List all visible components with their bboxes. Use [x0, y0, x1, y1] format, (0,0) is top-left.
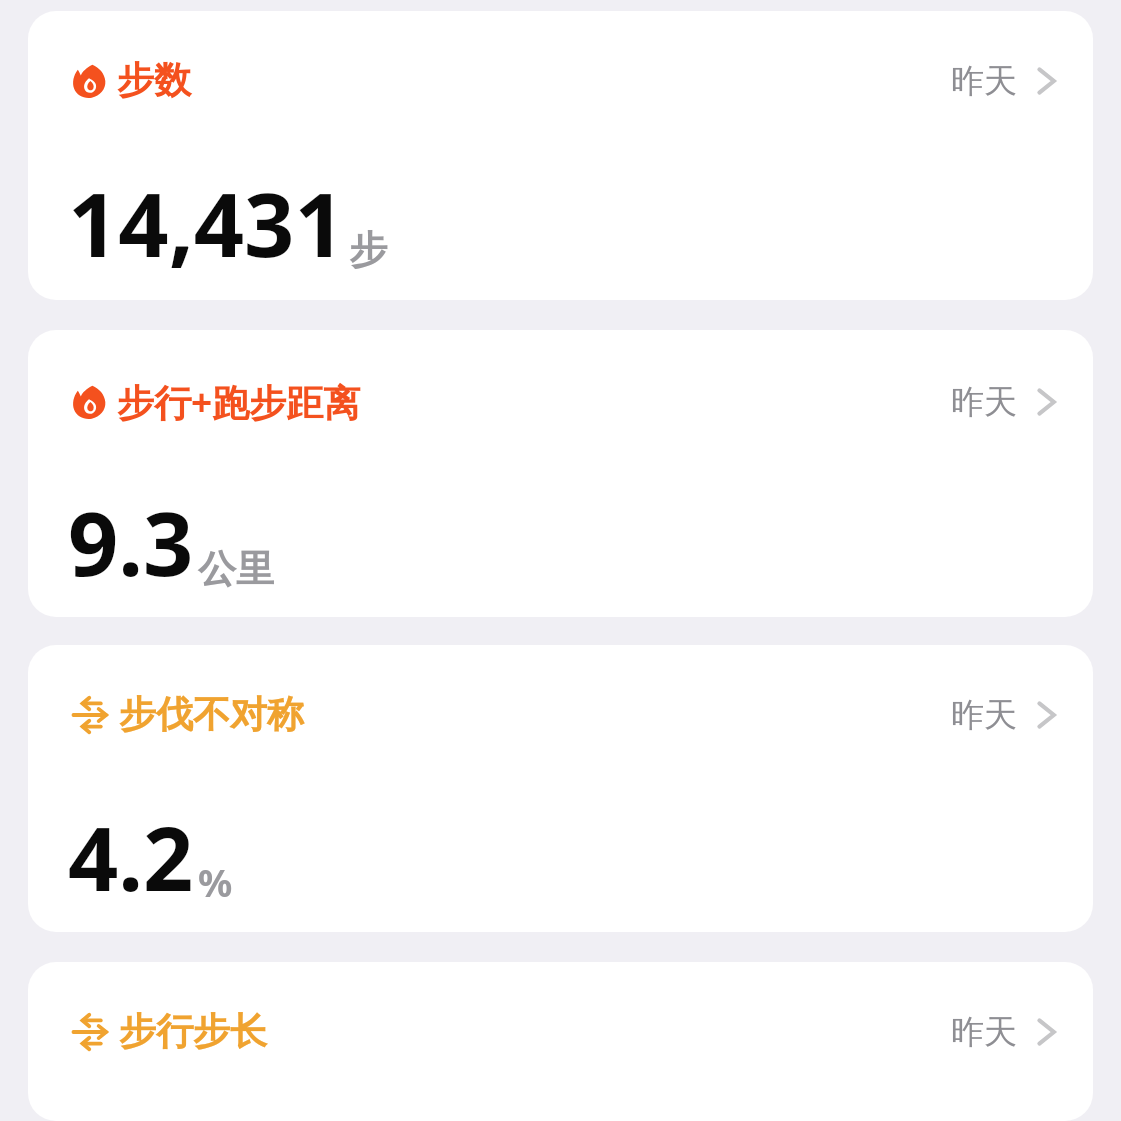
- other: Open details: [1037, 384, 1057, 420]
- other: Open details: [1037, 1014, 1057, 1050]
- staticText: 步行步长: [119, 1008, 267, 1055]
- staticText: 公里: [198, 545, 274, 593]
- staticText: 14,431: [68, 163, 345, 283]
- staticText: 昨天: [951, 694, 1017, 736]
- button[interactable]: Asymmetry: [28, 962, 1093, 1121]
- other: Open details: [1037, 697, 1057, 733]
- button[interactable]: Activity: [28, 330, 1093, 617]
- staticText: 步行+跑步距离: [117, 376, 361, 427]
- other: Activity: [72, 64, 106, 98]
- other: Asymmetry: [72, 697, 108, 733]
- staticText: 4.2: [68, 797, 194, 917]
- staticText: 昨天: [951, 381, 1017, 423]
- staticText: 9.3: [68, 482, 194, 602]
- staticText: 步数: [117, 57, 191, 104]
- other: Activity: [72, 385, 106, 419]
- other: Asymmetry: [72, 1014, 108, 1050]
- staticText: 步伐不对称: [119, 691, 304, 738]
- button[interactable]: Activity: [28, 11, 1093, 300]
- other: Open details: [1037, 63, 1057, 99]
- staticText: 昨天: [951, 1011, 1017, 1053]
- button[interactable]: Asymmetry: [28, 645, 1093, 932]
- staticText: 步: [349, 226, 387, 274]
- staticText: %: [198, 856, 233, 908]
- staticText: 昨天: [951, 60, 1017, 102]
